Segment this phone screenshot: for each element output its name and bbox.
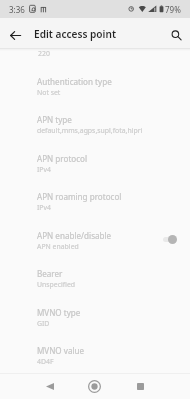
- button[interactable]: Authentication type: [0, 65, 190, 103]
- button[interactable]: APN roaming protocol: [0, 180, 190, 218]
- button[interactable]: Home: [84, 376, 104, 396]
- button[interactable]: MVNO type: [0, 296, 190, 334]
- button[interactable]: Back: [40, 376, 60, 396]
- staticText: 79%: [165, 4, 181, 15]
- staticText: Unspecified: [37, 280, 76, 289]
- staticText: APN protocol: [37, 153, 88, 164]
- staticText: APN enable/disable: [37, 230, 112, 241]
- staticText: IPv4: [37, 165, 51, 174]
- button[interactable]: MVNO value: [0, 334, 190, 372]
- staticText: GID: [37, 319, 50, 328]
- button[interactable]: Bearer: [0, 257, 190, 295]
- staticText: APN type: [37, 114, 72, 125]
- button[interactable]: Search: [167, 26, 186, 45]
- button[interactable]: APN protocol: [0, 142, 190, 180]
- staticText: Bearer: [37, 268, 63, 279]
- button[interactable]: APN type: [0, 103, 190, 141]
- button[interactable]: APN enable/disable: [0, 219, 190, 257]
- staticText: Authentication type: [37, 76, 112, 87]
- staticText: APN enabled: [37, 242, 79, 251]
- staticText: Edit access point: [34, 27, 116, 41]
- staticText: 4D4F: [37, 357, 54, 366]
- staticText: MVNO value: [37, 345, 85, 356]
- button[interactable]: Recent apps: [130, 376, 150, 396]
- staticText: 3:36: [9, 4, 25, 15]
- staticText: 220: [38, 49, 50, 58]
- staticText: APN roaming protocol: [37, 191, 122, 202]
- staticText: MVNO type: [37, 307, 81, 318]
- staticText: default,mms,agps,supl,fota,hipri: [37, 126, 143, 135]
- button[interactable]: Navigate up: [6, 26, 25, 45]
- staticText: IPv4: [37, 203, 51, 212]
- staticText: Not set: [37, 88, 61, 97]
